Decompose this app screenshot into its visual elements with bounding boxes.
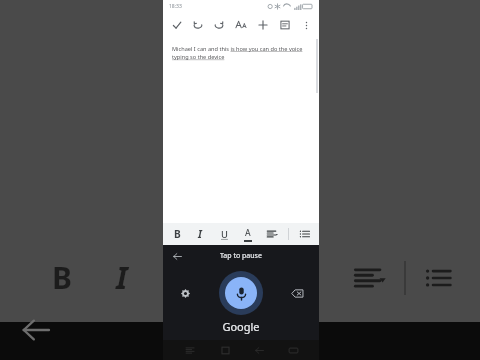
button[interactable]: Home [217, 342, 233, 358]
button[interactable]: Back [251, 342, 267, 358]
button[interactable]: Keyboard [285, 342, 301, 358]
staticText: I [198, 227, 202, 241]
staticText: Michael I can and this is how you can do… [172, 45, 310, 61]
staticText: A [245, 227, 251, 239]
staticText: B [52, 257, 72, 298]
button[interactable]: Pause voice typing [219, 271, 263, 315]
button[interactable]: Done [168, 16, 186, 34]
button[interactable]: Format [232, 16, 250, 34]
button[interactable]: Text color [240, 226, 256, 242]
button[interactable]: Alignment [264, 226, 280, 242]
button[interactable]: List [297, 226, 313, 242]
button[interactable]: Menu [182, 342, 198, 358]
button[interactable]: Bold [169, 226, 185, 242]
button[interactable]: Comments [276, 16, 294, 34]
staticText: U [221, 228, 228, 241]
button[interactable]: Italic [192, 226, 208, 242]
button[interactable]: Insert [254, 16, 272, 34]
button[interactable]: Underline [216, 226, 232, 242]
button[interactable]: Backspace [287, 283, 307, 303]
staticText: B [174, 227, 181, 241]
staticText: Tap to pause [220, 251, 262, 261]
button[interactable]: Undo [189, 16, 207, 34]
button[interactable]: Settings [175, 283, 195, 303]
staticText: 18:33 [169, 3, 182, 10]
staticText: I [116, 257, 128, 298]
button[interactable]: Back [169, 248, 185, 264]
button[interactable]: More options [298, 17, 314, 33]
staticText: Google [222, 319, 260, 334]
button[interactable]: Redo [210, 16, 228, 34]
